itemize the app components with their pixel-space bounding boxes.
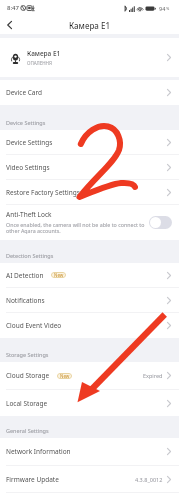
button[interactable]: Камера E1 [0, 38, 179, 77]
staticText: Notifications [6, 296, 45, 305]
staticText: 94 [159, 5, 166, 12]
staticText: ОПАЛЕННЯ [27, 60, 52, 66]
button[interactable]: Device Settings [0, 130, 179, 155]
button[interactable]: Restore Factory Settings [0, 180, 179, 205]
staticText: General Settings [6, 427, 49, 434]
button[interactable]: Network Information [0, 438, 179, 466]
staticText: Device Settings [6, 138, 53, 147]
staticText: % [166, 6, 170, 11]
staticText: Video Settings [6, 163, 50, 172]
button[interactable]: Device Card [0, 80, 179, 105]
staticText: Local Storage [6, 399, 48, 408]
button[interactable]: Notifications [0, 288, 179, 313]
staticText: 4.3.8_0012 [135, 476, 163, 483]
staticText: AI Detection [6, 271, 44, 280]
button[interactable]: AI Detection [0, 263, 179, 288]
staticText: Network Information [6, 447, 71, 456]
staticText: Cloud Event Video [6, 321, 62, 330]
button[interactable]: Anti-Theft Lock toggle [149, 216, 172, 229]
staticText: New [54, 272, 64, 278]
staticText: Storage Settings [6, 351, 49, 358]
button[interactable]: Local Storage [0, 390, 179, 416]
staticText: Камера E1 [27, 49, 61, 58]
staticText: Камера E1 [69, 20, 110, 31]
staticText: Restore Factory Settings [6, 188, 80, 197]
button[interactable]: Anti-Theft Lock [0, 205, 179, 240]
staticText: New [60, 373, 70, 379]
button[interactable]: Video Settings [0, 155, 179, 180]
staticText: Device Settings [6, 119, 46, 126]
staticText: Firmware Update [6, 475, 59, 484]
button[interactable]: Firmware Update [0, 466, 179, 493]
staticText: Device Card [6, 88, 43, 97]
button[interactable]: Cloud Storage [0, 362, 179, 390]
staticText: Cloud Storage [6, 371, 50, 380]
staticText: 8:47 [7, 4, 19, 12]
staticText: Expired [143, 372, 163, 379]
staticText: Once enabled, the camera will not be abl… [6, 221, 146, 235]
staticText: Detection Settings [6, 252, 54, 259]
staticText: Anti-Theft Lock [6, 210, 52, 219]
button[interactable]: Cloud Event Video [0, 313, 179, 338]
button[interactable]: Back [0, 16, 18, 34]
